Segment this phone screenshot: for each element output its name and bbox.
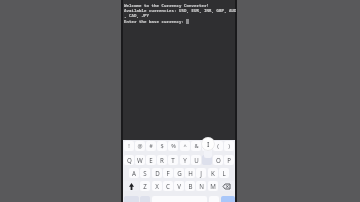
staticText: E bbox=[149, 156, 153, 164]
button[interactable]: B bbox=[185, 181, 195, 191]
staticText: & bbox=[194, 142, 199, 150]
button[interactable]: Z bbox=[140, 181, 150, 191]
staticText: Welcome to the Currency Converter! bbox=[124, 3, 209, 8]
staticText: T bbox=[171, 156, 175, 164]
staticText: W bbox=[137, 156, 143, 164]
staticText: ^ bbox=[183, 142, 187, 150]
staticText: X bbox=[155, 182, 159, 190]
staticText: # bbox=[149, 142, 153, 150]
staticText: U bbox=[194, 156, 199, 164]
button[interactable]: @ bbox=[135, 141, 145, 151]
button[interactable]: G bbox=[174, 168, 184, 178]
staticText: Available currencies: USD, EUR, INR, GBP… bbox=[124, 8, 236, 13]
staticText: P bbox=[227, 156, 231, 164]
button[interactable]: Q bbox=[124, 155, 134, 165]
button[interactable]: L bbox=[219, 168, 229, 178]
button[interactable]: P bbox=[224, 155, 234, 165]
staticText: V bbox=[177, 182, 181, 190]
staticText: F bbox=[166, 169, 170, 177]
button[interactable]: * bbox=[202, 141, 212, 151]
button[interactable]: ! bbox=[124, 141, 134, 151]
button[interactable]: F bbox=[163, 168, 173, 178]
button[interactable]: N bbox=[196, 181, 206, 191]
button[interactable] bbox=[124, 181, 139, 191]
button[interactable]: $ bbox=[157, 141, 167, 151]
button[interactable] bbox=[202, 155, 212, 165]
button[interactable]: V bbox=[174, 181, 184, 191]
staticText: A bbox=[132, 169, 136, 177]
button[interactable]: ^ bbox=[180, 141, 190, 151]
staticText: D bbox=[155, 169, 160, 177]
staticText: ) bbox=[228, 142, 230, 150]
staticText: O bbox=[216, 156, 221, 164]
button[interactable]: J bbox=[196, 168, 206, 178]
button[interactable]: W bbox=[135, 155, 145, 165]
staticText: R bbox=[160, 156, 164, 164]
button[interactable] bbox=[221, 196, 235, 202]
staticText: ! bbox=[128, 142, 130, 150]
staticText: * bbox=[205, 142, 209, 150]
button[interactable]: # bbox=[146, 141, 156, 151]
button[interactable]: H bbox=[185, 168, 195, 178]
staticText: % bbox=[171, 142, 176, 150]
staticText: $ bbox=[160, 142, 164, 150]
button[interactable]: S bbox=[140, 168, 150, 178]
button[interactable]: U bbox=[191, 155, 201, 165]
staticText: @ bbox=[137, 142, 143, 150]
button[interactable]: M bbox=[208, 181, 218, 191]
staticText: B bbox=[188, 182, 193, 190]
staticText: N bbox=[199, 182, 204, 190]
staticText: I bbox=[207, 140, 210, 149]
button[interactable]: Y bbox=[180, 155, 190, 165]
staticText: Z bbox=[143, 182, 147, 190]
staticText: Q bbox=[127, 156, 132, 164]
staticText: G bbox=[177, 169, 182, 177]
button[interactable]: X bbox=[152, 181, 162, 191]
staticText: C bbox=[166, 182, 170, 190]
staticText: ( bbox=[217, 142, 219, 150]
staticText: S bbox=[143, 169, 147, 177]
button[interactable] bbox=[220, 181, 235, 191]
button[interactable]: & bbox=[191, 141, 201, 151]
button[interactable]: % bbox=[168, 141, 178, 151]
button[interactable]: T bbox=[168, 155, 178, 165]
staticText: , CAD, JPY bbox=[124, 13, 149, 18]
button[interactable]: D bbox=[152, 168, 162, 178]
staticText: J bbox=[200, 169, 202, 177]
staticText: Enter the base currency: bbox=[124, 19, 187, 24]
button[interactable]: O bbox=[213, 155, 223, 165]
button[interactable]: ) bbox=[224, 141, 234, 151]
button[interactable]: K bbox=[208, 168, 218, 178]
staticText: K bbox=[211, 169, 215, 177]
button[interactable]: C bbox=[163, 181, 173, 191]
button[interactable]: R bbox=[157, 155, 167, 165]
button[interactable]: A bbox=[129, 168, 139, 178]
staticText: L bbox=[222, 169, 226, 177]
button[interactable]: ( bbox=[213, 141, 223, 151]
button[interactable]: E bbox=[146, 155, 156, 165]
staticText: H bbox=[188, 169, 193, 177]
staticText: M bbox=[210, 182, 216, 190]
staticText: Y bbox=[183, 156, 187, 164]
